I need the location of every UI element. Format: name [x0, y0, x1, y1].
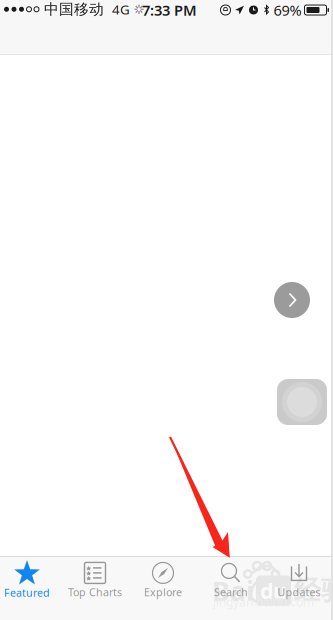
staticText: 7:33 PM [142, 0, 197, 20]
button[interactable]: Featured [0, 556, 61, 620]
button[interactable]: Updates [265, 557, 333, 619]
staticText: 中国移动 [44, 0, 104, 18]
button[interactable]: Search [197, 557, 265, 619]
button[interactable]: Top Charts [61, 557, 129, 619]
button[interactable]: Explore [129, 557, 197, 619]
staticText: 经验 [294, 574, 333, 607]
staticText: Bai [212, 573, 254, 608]
staticText: Updates [277, 585, 320, 599]
staticText: du [260, 576, 287, 605]
staticText: Featured [4, 585, 50, 600]
staticText: 4G [112, 0, 130, 18]
button[interactable]: AssistiveTouch [277, 379, 327, 425]
staticText: 69% [273, 0, 301, 20]
button[interactable]: Next [274, 282, 310, 318]
staticText: jingyan.baidu.com [213, 594, 314, 610]
staticText: Search [214, 585, 248, 599]
staticText: Explore [144, 585, 182, 599]
staticText: Top Charts [68, 585, 122, 599]
